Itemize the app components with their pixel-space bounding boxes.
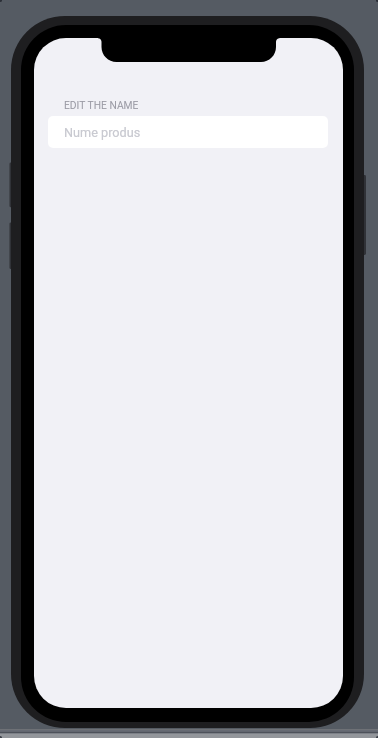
staticText: Nume produs — [64, 125, 141, 140]
staticText: EDIT THE NAME — [64, 99, 139, 111]
button[interactable]: Product name input — [48, 116, 328, 148]
